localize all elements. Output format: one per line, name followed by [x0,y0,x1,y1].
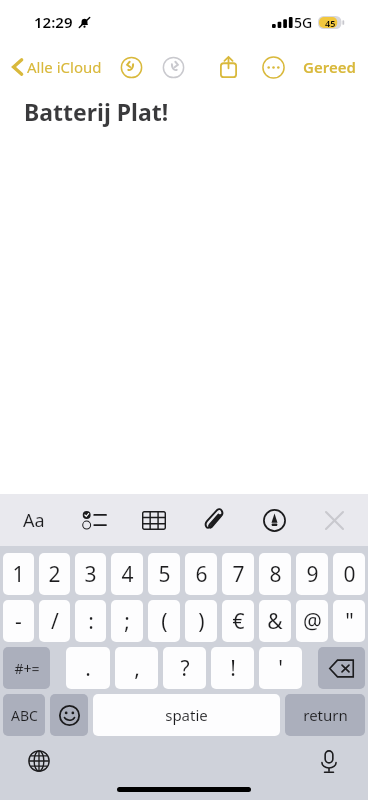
button[interactable]: ABC [3,694,45,736]
button[interactable]: , [115,647,158,689]
staticText: #+= [14,659,40,678]
staticText: . [85,654,91,683]
button[interactable]: @ [296,600,328,642]
button[interactable]: 5 [148,553,180,595]
staticText: 3 [84,560,97,589]
button[interactable]: spatie [93,694,280,736]
staticText: & [267,607,283,636]
button[interactable]: Table [134,500,174,540]
staticText: 5G [294,13,313,32]
staticText: ; [124,607,130,636]
button[interactable]: #+= [3,647,50,689]
staticText: 12:29 [34,12,73,32]
button[interactable]: . [66,647,110,689]
button[interactable]: 2 [39,553,70,595]
staticText: 45 [325,17,336,29]
button[interactable]: Dictate [312,744,346,778]
staticText: ? [180,654,190,683]
staticText: 6 [195,560,208,589]
staticText: ) [198,607,205,636]
staticText: 2 [48,560,61,589]
staticText: 9 [306,560,319,589]
staticText: 0 [343,560,356,589]
staticText: - [15,607,22,636]
staticText: spatie [165,705,208,725]
staticText: € [232,607,245,636]
button[interactable]: - [3,600,34,642]
staticText: ' [278,654,283,683]
button[interactable]: Checklist [74,500,114,540]
staticText: @ [303,607,322,636]
staticText: ! [230,654,236,683]
button[interactable]: Undo [116,52,146,82]
button[interactable]: 0 [333,553,365,595]
button[interactable]: 8 [259,553,291,595]
button[interactable]: 3 [75,553,106,595]
button[interactable]: & [259,600,291,642]
button[interactable]: ) [185,600,217,642]
staticText: 1 [12,560,25,589]
button[interactable]: " [333,600,365,642]
button[interactable]: ; [111,600,143,642]
button[interactable]: Backspace [318,647,365,689]
button[interactable]: ( [148,600,180,642]
button[interactable]: Markup [254,500,294,540]
button[interactable]: return [285,694,365,736]
button[interactable]: Close keyboard [314,500,354,540]
staticText: Alle iCloud [27,57,102,77]
staticText: Gereed [303,57,356,77]
staticText: 5 [158,560,171,589]
staticText: return [303,705,348,725]
button[interactable]: Emoji [50,694,88,736]
staticText: ( [161,607,168,636]
staticText: , [134,654,140,683]
staticText: " [345,607,354,636]
button[interactable]: 4 [111,553,143,595]
button[interactable]: Gereed [299,53,360,81]
button[interactable]: / [39,600,70,642]
staticText: 4 [121,560,134,589]
button[interactable]: : [75,600,106,642]
button[interactable]: Format [14,500,54,540]
button[interactable]: ! [211,647,254,689]
button[interactable]: Alle iCloud [8,53,106,81]
button[interactable]: More [257,51,289,83]
button[interactable]: ? [163,647,206,689]
staticText: ABC [11,706,38,725]
button[interactable]: Share [211,50,245,84]
button[interactable]: Change keyboard [22,744,56,778]
button[interactable]: 9 [296,553,328,595]
button[interactable]: 7 [222,553,254,595]
staticText: 7 [232,560,245,589]
button[interactable]: 6 [185,553,217,595]
button[interactable]: € [222,600,254,642]
staticText: Aa [23,508,45,533]
button[interactable]: Redo [158,52,188,82]
staticText: Batterij Plat! [24,96,169,127]
staticText: 8 [269,560,282,589]
button[interactable]: 1 [3,553,34,595]
staticText: / [51,607,59,636]
button[interactable]: ' [259,647,302,689]
staticText: : [88,607,94,636]
button[interactable]: Attach [194,500,234,540]
